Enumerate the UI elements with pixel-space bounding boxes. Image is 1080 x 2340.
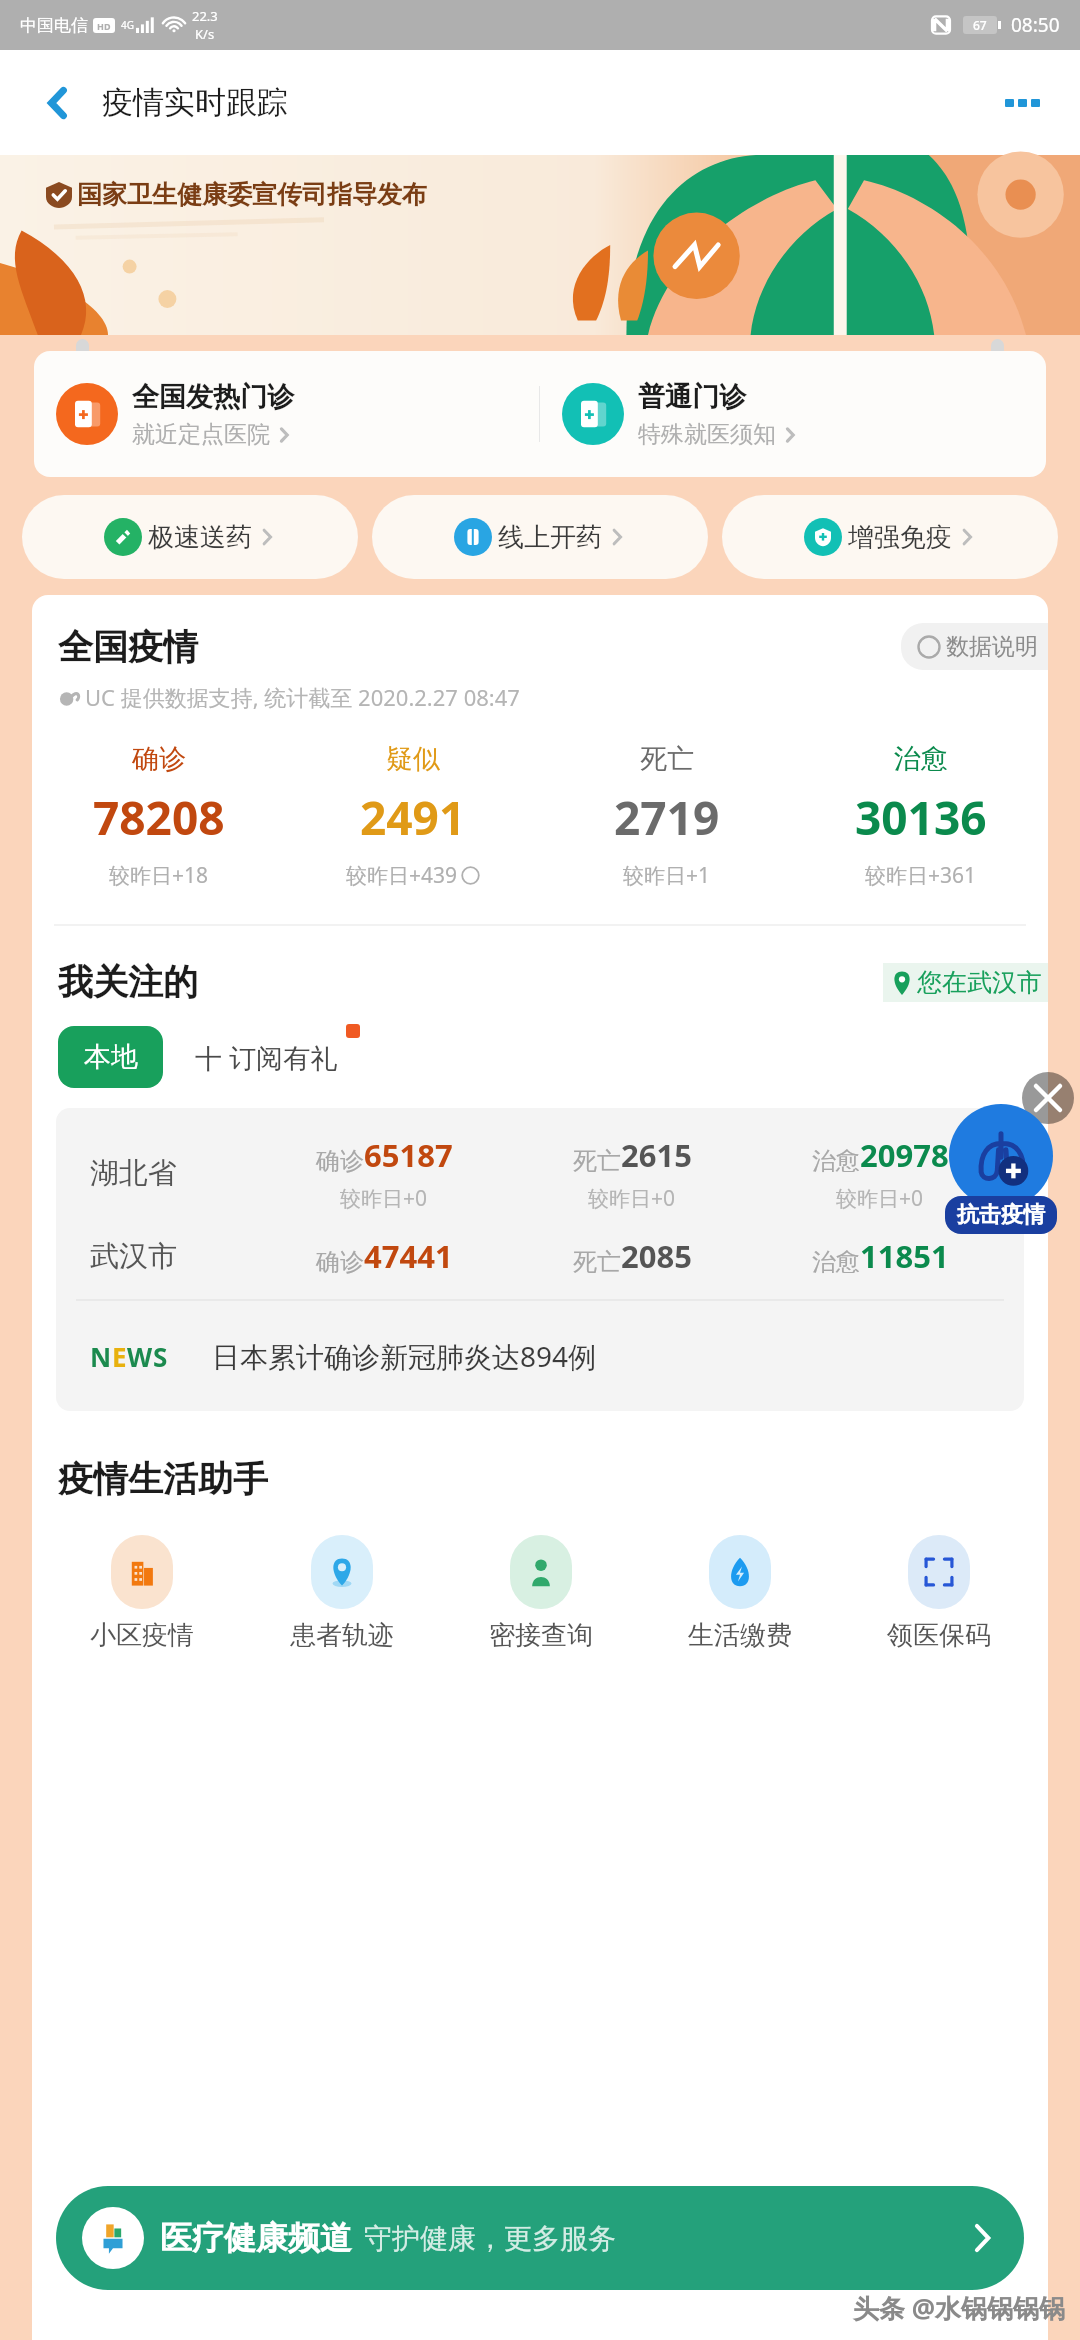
staticText: 20978	[860, 1134, 949, 1176]
staticText: 小区疫情	[90, 1619, 194, 1652]
button[interactable]: 医疗健康频道	[56, 2186, 1024, 2290]
staticText: 67	[973, 17, 987, 33]
staticText: UC 提供数据支持, 统计截至 2020.2.27 08:47	[85, 682, 520, 712]
staticText: S	[153, 1339, 168, 1374]
staticText: 确诊	[316, 1247, 364, 1277]
staticText: 普通门诊	[638, 380, 746, 414]
button[interactable]: 患者轨迹	[242, 1535, 441, 1652]
button[interactable]: 线上开药	[372, 495, 708, 579]
staticText: 治愈	[894, 742, 948, 776]
staticText: HD	[97, 20, 111, 32]
staticText: 湖北省	[90, 1155, 260, 1192]
staticText: 47441	[364, 1235, 453, 1277]
staticText: 较昨日+361	[865, 861, 977, 890]
staticText: 死亡	[573, 1247, 621, 1277]
button[interactable]: 生活缴费	[640, 1535, 839, 1652]
button[interactable]: 湖北省	[56, 1134, 1024, 1213]
staticText: 22.3	[192, 7, 218, 25]
button[interactable]: 密接查询	[441, 1535, 640, 1652]
staticText: 治愈	[812, 1247, 860, 1277]
staticText: 确诊	[316, 1146, 364, 1176]
staticText: 武汉市	[90, 1238, 260, 1275]
staticText: N	[90, 1339, 112, 1374]
button[interactable]: 武汉市	[56, 1235, 1024, 1277]
staticText: 全国疫情	[58, 625, 198, 669]
staticText: 30136	[855, 786, 987, 849]
staticText: 数据说明	[946, 632, 1038, 661]
staticText: 4G	[121, 18, 134, 32]
button[interactable]: 您在武汉市	[883, 963, 1048, 1002]
button[interactable]: Close	[1022, 1072, 1074, 1124]
staticText: 抗击疫情	[957, 1201, 1045, 1229]
staticText: 密接查询	[489, 1619, 593, 1652]
staticText: 十 订阅有礼	[195, 1039, 338, 1076]
staticText: 78208	[93, 786, 225, 849]
staticText: 中国电信	[20, 15, 88, 36]
staticText: 较昨日+0	[588, 1184, 676, 1213]
button[interactable]: 数据说明	[901, 623, 1048, 670]
staticText: 国家卫生健康委宣传司指导发布	[77, 179, 427, 210]
staticText: 头条 @水锅锅锅锅	[853, 2290, 1066, 2326]
staticText: 65187	[364, 1134, 453, 1176]
staticText: 极速送药	[148, 521, 252, 554]
staticText: 我关注的	[58, 960, 198, 1004]
button[interactable]: 小区疫情	[42, 1535, 242, 1652]
staticText: 2085	[621, 1235, 692, 1277]
staticText: 08:50	[1011, 12, 1060, 38]
staticText: K/s	[195, 25, 215, 43]
staticText: 疑似	[386, 742, 440, 776]
staticText: 较昨日+439	[346, 861, 458, 890]
staticText: 特殊就医须知	[638, 420, 776, 449]
button[interactable]: 十 订阅有礼	[175, 1026, 358, 1088]
staticText: 较昨日+18	[109, 861, 209, 890]
staticText: 死亡	[640, 742, 694, 776]
button[interactable]: 抗击疫情	[936, 1104, 1066, 1234]
staticText: 死亡	[573, 1146, 621, 1176]
staticText: 本地	[84, 1040, 138, 1074]
staticText: 就近定点医院	[132, 420, 270, 449]
staticText: 疫情实时跟踪	[102, 83, 288, 122]
staticText: 较昨日+0	[836, 1184, 924, 1213]
staticText: 治愈	[812, 1146, 860, 1176]
button[interactable]: More options	[992, 73, 1052, 133]
staticText: 线上开药	[498, 521, 602, 554]
staticText: W	[127, 1339, 153, 1374]
staticText: 增强免疫	[848, 521, 952, 554]
button[interactable]: N	[56, 1301, 1024, 1411]
staticText: 生活缴费	[688, 1619, 792, 1652]
staticText: 疫情生活助手	[58, 1457, 268, 1501]
staticText: E	[112, 1339, 127, 1374]
staticText: 确诊	[132, 742, 186, 776]
staticText: 2615	[621, 1134, 692, 1176]
staticText: 较昨日+0	[340, 1184, 428, 1213]
staticText: 您在武汉市	[917, 967, 1042, 998]
button[interactable]: 全国发热门诊	[34, 351, 539, 477]
staticText: 2491	[360, 786, 466, 849]
button[interactable]: Back	[28, 73, 88, 133]
staticText: 2719	[614, 786, 720, 849]
button[interactable]: 增强免疫	[722, 495, 1058, 579]
button[interactable]: 极速送药	[22, 495, 358, 579]
button[interactable]: 本地	[58, 1026, 163, 1088]
staticText: 患者轨迹	[290, 1619, 394, 1652]
staticText: 较昨日+1	[623, 861, 711, 890]
staticText: 全国发热门诊	[132, 380, 294, 414]
staticText: 领医保码	[887, 1619, 991, 1652]
staticText: 11851	[860, 1235, 949, 1277]
staticText: 医疗健康频道	[160, 2218, 352, 2258]
button[interactable]: 领医保码	[839, 1535, 1038, 1652]
staticText: 守护健康，更多服务	[364, 2221, 616, 2256]
button[interactable]: 普通门诊	[540, 351, 1046, 477]
staticText: 日本累计确诊新冠肺炎达894例	[212, 1337, 597, 1375]
